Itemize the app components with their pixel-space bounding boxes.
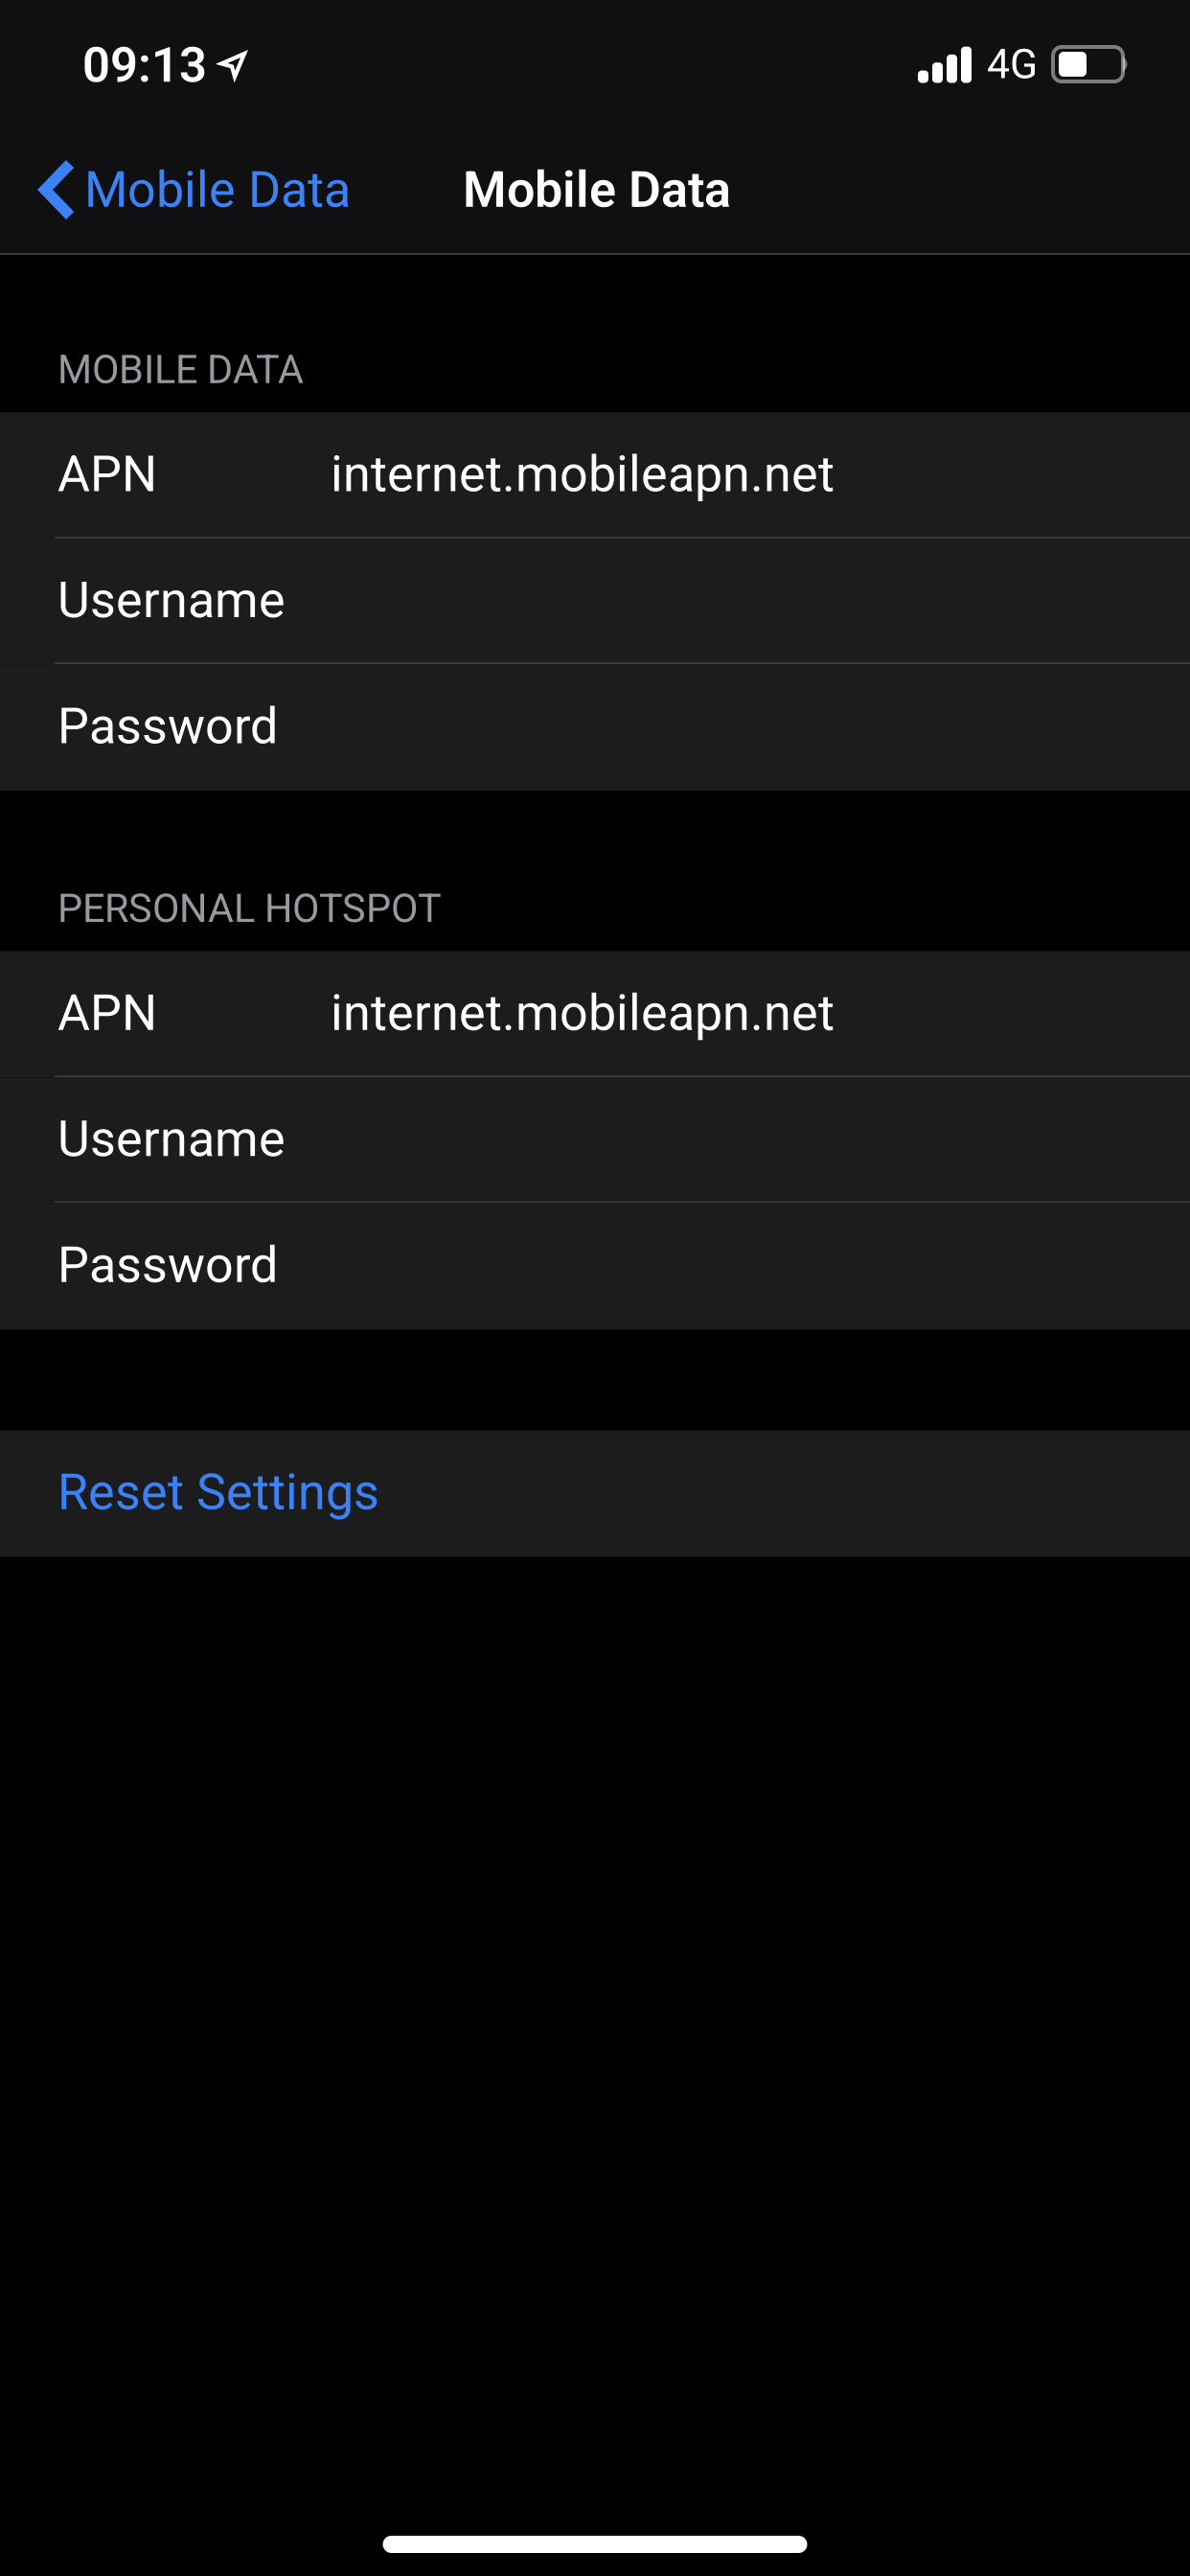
button[interactable]: APN <box>0 412 1190 539</box>
staticText: internet.mobileapn.net <box>331 446 835 503</box>
staticText: Username <box>57 1110 286 1167</box>
button[interactable]: Reset Settings <box>0 1430 1190 1557</box>
button[interactable]: APN <box>0 951 1190 1078</box>
staticText: Username <box>57 572 286 629</box>
staticText: APN <box>57 446 157 503</box>
button[interactable]: Password <box>0 664 1190 791</box>
staticText: Password <box>57 698 278 755</box>
button[interactable]: Username <box>0 539 1190 664</box>
staticText: 4G <box>987 41 1038 88</box>
staticText: APN <box>57 984 157 1041</box>
staticText: Password <box>57 1236 278 1293</box>
staticText: Mobile Data <box>463 161 731 218</box>
button[interactable]: Username <box>0 1078 1190 1203</box>
staticText: internet.mobileapn.net <box>331 984 835 1041</box>
button[interactable]: Password <box>0 1203 1190 1330</box>
button[interactable]: Back to Mobile Data <box>0 126 370 253</box>
staticText: MOBILE DATA <box>57 347 304 392</box>
staticText: 09:13 <box>82 37 207 93</box>
staticText: Reset Settings <box>57 1464 379 1520</box>
staticText: PERSONAL HOTSPOT <box>57 886 442 931</box>
staticText: Mobile Data <box>84 161 351 218</box>
